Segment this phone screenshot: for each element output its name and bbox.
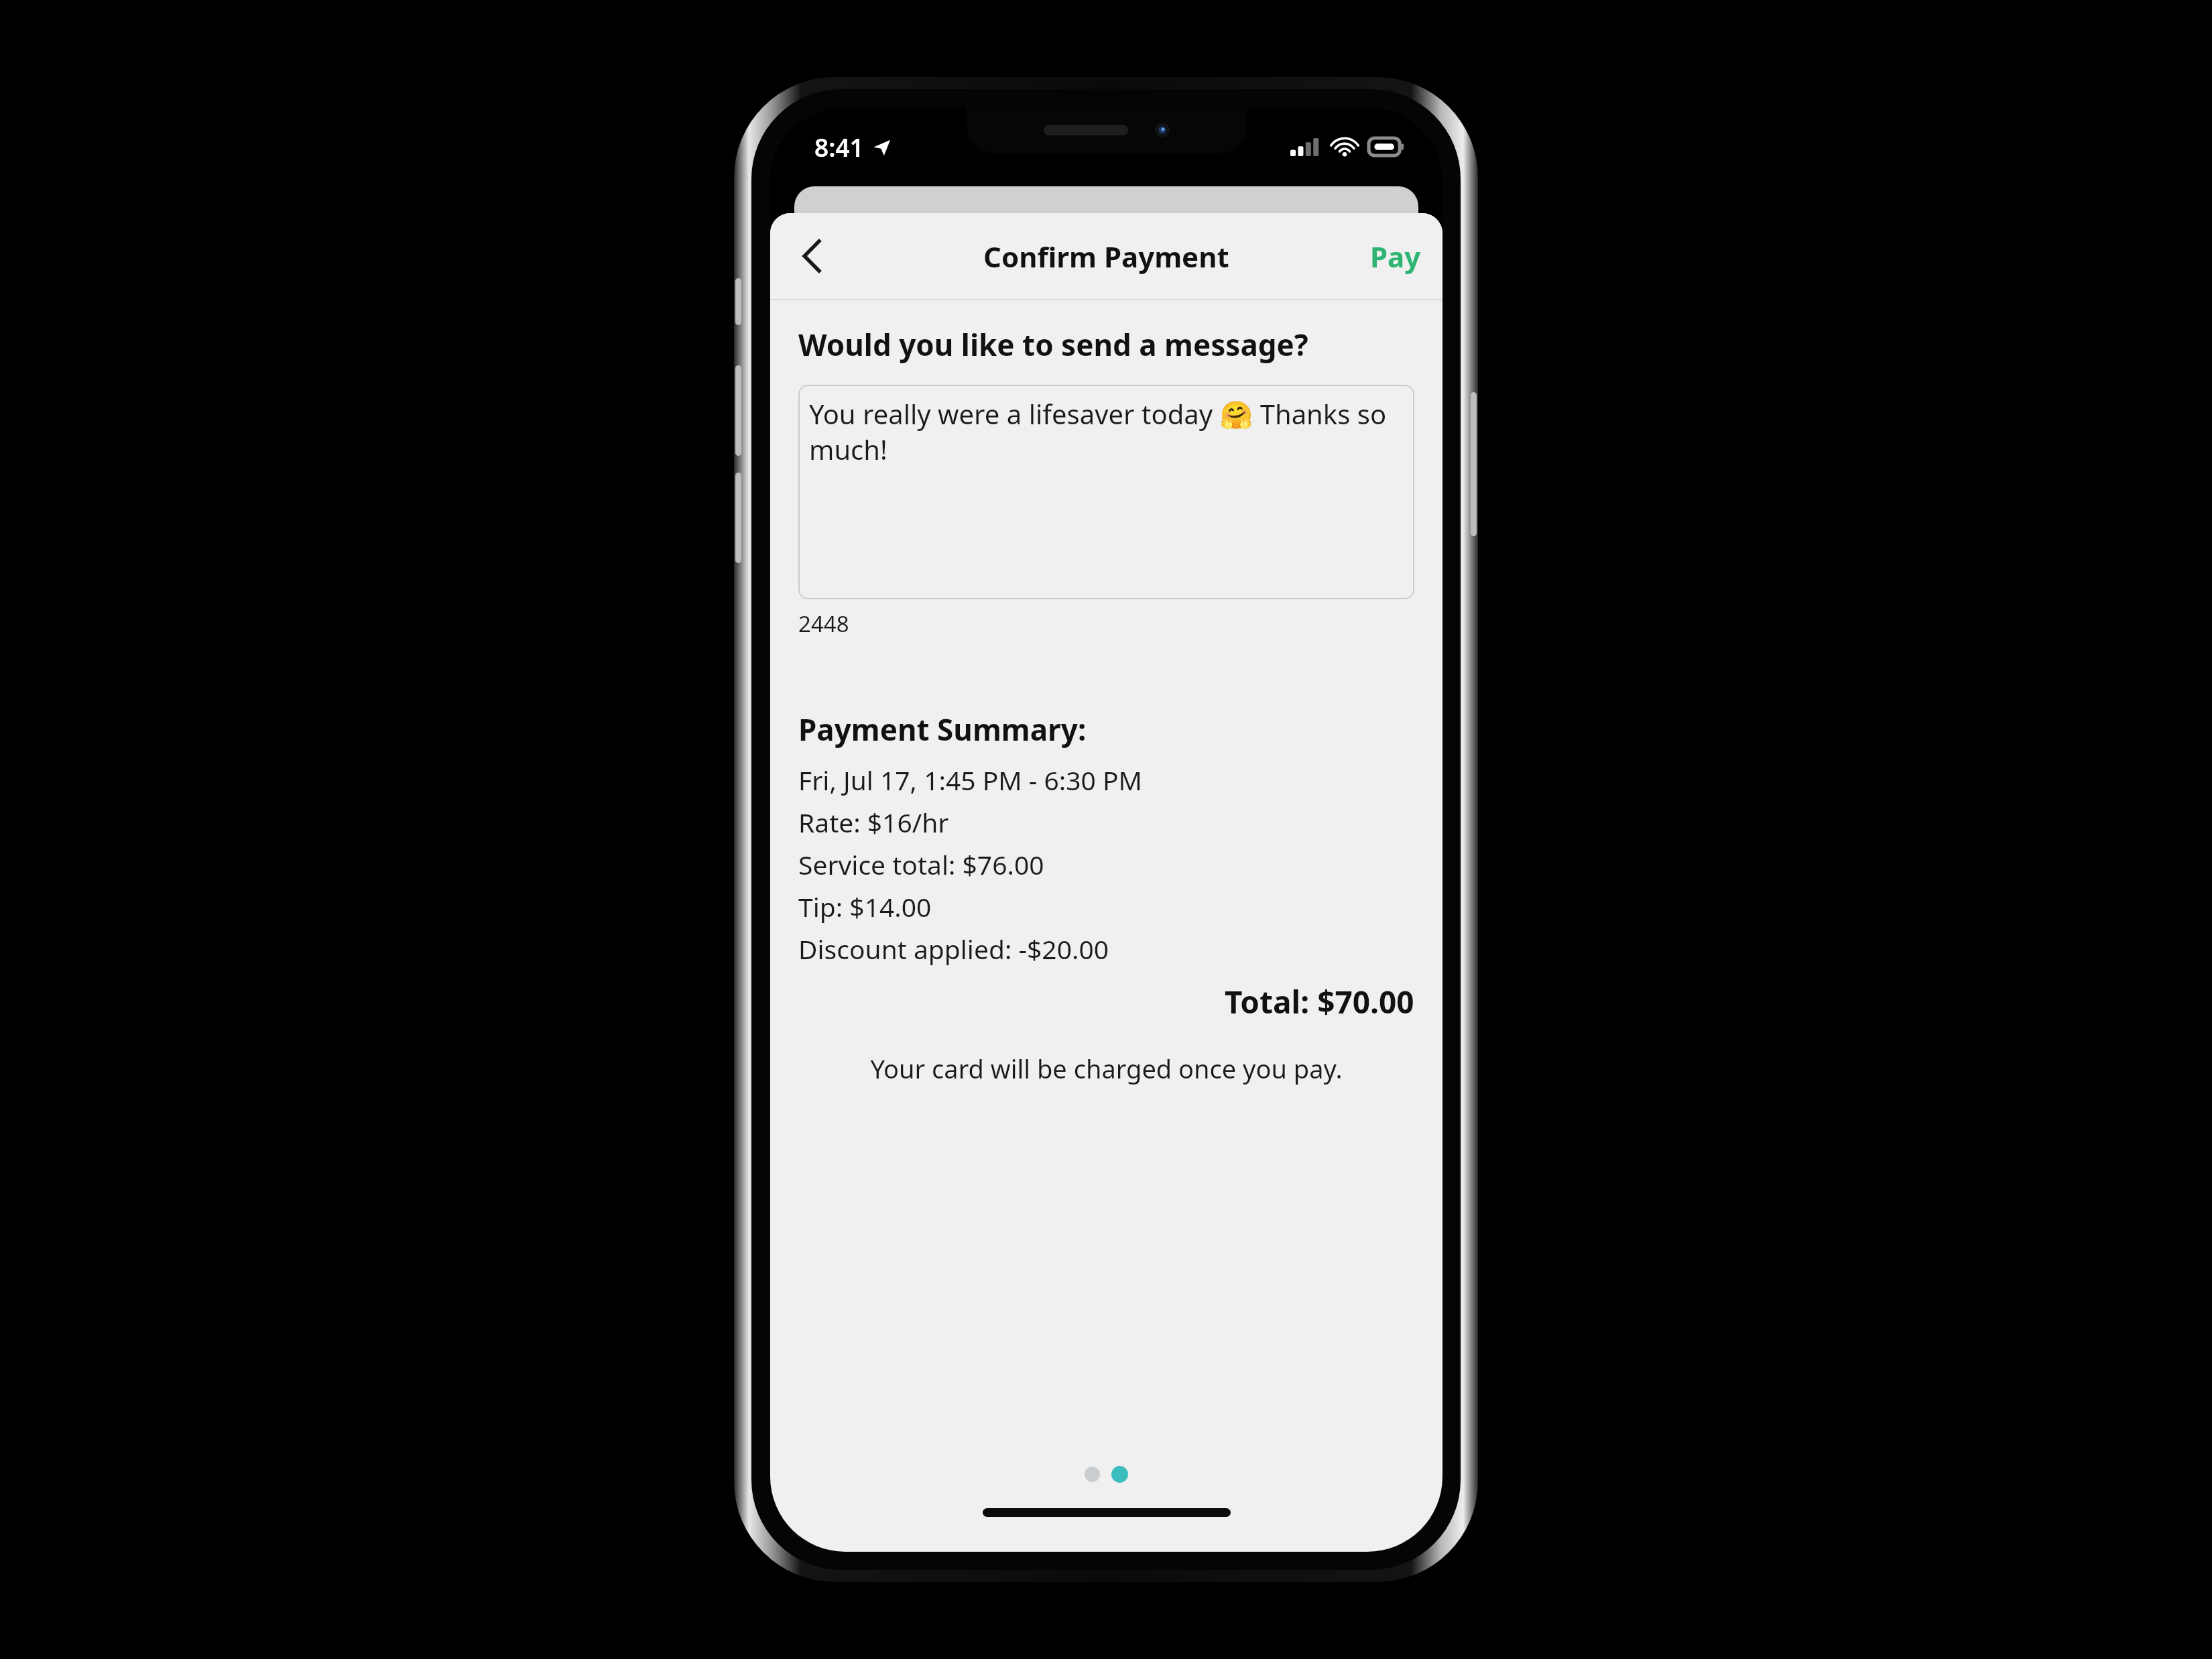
staticText: Rate: $16/hr bbox=[798, 804, 949, 840]
button[interactable]: Back bbox=[782, 227, 841, 286]
staticText: Pay bbox=[1370, 237, 1421, 275]
staticText: Discount applied: -$20.00 bbox=[798, 931, 1109, 967]
staticText: Your card will be charged once you pay. bbox=[870, 1051, 1343, 1086]
button[interactable]: You really were a lifesaver today 🤗 Than… bbox=[798, 385, 1414, 599]
button[interactable]: Page 2 bbox=[1111, 1466, 1128, 1483]
staticText: 2448 bbox=[798, 609, 849, 639]
button[interactable]: Pay bbox=[1362, 228, 1429, 285]
staticText: Fri, Jul 17, 1:45 PM - 6:30 PM bbox=[798, 762, 1142, 798]
staticText: Total: $70.00 bbox=[1225, 981, 1414, 1023]
staticText: Tip: $14.00 bbox=[798, 889, 932, 924]
staticText: 8:41 bbox=[814, 130, 864, 164]
button[interactable]: Page 1 bbox=[1085, 1467, 1100, 1482]
staticText: Would you like to send a message? bbox=[798, 324, 1308, 365]
staticText: Payment Summary: bbox=[798, 709, 1087, 749]
staticText: You really were a lifesaver today 🤗 Than… bbox=[809, 395, 1404, 468]
staticText: Confirm Payment bbox=[983, 237, 1229, 275]
staticText: Service total: $76.00 bbox=[798, 847, 1044, 882]
